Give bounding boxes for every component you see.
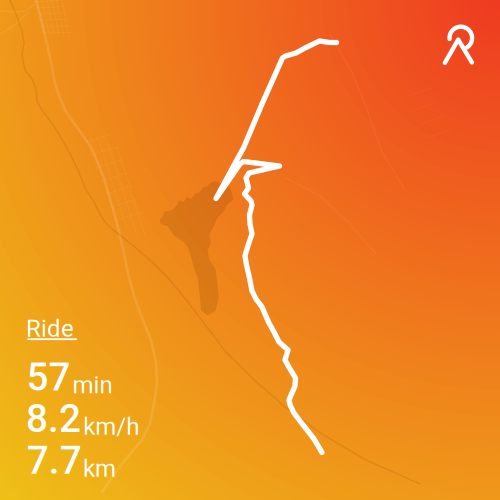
staticText: km — [83, 454, 116, 482]
staticText: Ride — [26, 315, 74, 343]
staticText: 7.7 — [27, 438, 82, 483]
staticText: min — [72, 371, 112, 399]
staticText: 8.2 — [26, 396, 81, 441]
staticText: 57 — [26, 355, 70, 400]
staticText: km/h — [83, 413, 139, 441]
